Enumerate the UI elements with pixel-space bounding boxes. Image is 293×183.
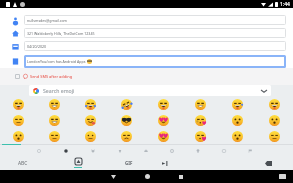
button[interactable]: 04/20/2020	[24, 41, 286, 51]
button[interactable]: Search emoji	[29, 85, 271, 96]
staticText: Search emoji	[43, 87, 75, 94]
button[interactable]: Emoji 0	[0, 96, 36, 112]
button[interactable]: Category 0	[25, 145, 52, 156]
button[interactable]: Emoji 22	[219, 128, 256, 144]
button[interactable]: Switch keyboard	[275, 170, 289, 183]
staticText: Send SMS after adding	[30, 74, 73, 79]
staticText: 1:44	[280, 1, 290, 8]
button[interactable]: Sticker	[45, 156, 110, 170]
button[interactable]: Category 5	[159, 145, 185, 156]
button[interactable]: Emoji 1	[36, 96, 72, 112]
button[interactable]: Emoji 12	[145, 112, 182, 128]
button[interactable]: Emoji 19	[108, 128, 145, 144]
button[interactable]: Emoji 13	[182, 112, 219, 128]
button[interactable]: Category 1	[52, 145, 79, 156]
button[interactable]: Emoji 4	[145, 96, 182, 112]
button[interactable]: Emoji 15	[256, 112, 293, 128]
button[interactable]: Emoji 11	[108, 112, 145, 128]
button[interactable]: Category 4	[133, 145, 159, 156]
button[interactable]: Category 3	[106, 145, 133, 156]
button[interactable]: Emoji 14	[219, 112, 256, 128]
staticText: ABC	[18, 160, 28, 167]
button[interactable]: Send SMS after adding	[0, 72, 293, 81]
button[interactable]: Emoji 8	[0, 112, 36, 128]
button[interactable]: Emoji 9	[36, 112, 72, 128]
button[interactable]: Emoji 23	[256, 128, 293, 144]
button[interactable]: Category 2	[79, 145, 106, 156]
button[interactable]: Back	[96, 170, 130, 183]
button[interactable]: Category 8	[237, 145, 263, 156]
button[interactable]: Emoji 20	[145, 128, 182, 144]
button[interactable]: Emoji 21	[182, 128, 219, 144]
button[interactable]: Emoji 7	[256, 96, 293, 112]
staticText: nullsmsdev@gmail.com	[27, 18, 67, 23]
button[interactable]: Category 7	[211, 145, 237, 156]
button[interactable]: 321 Waldoberly Hills, TheDotCom 12345	[24, 28, 286, 38]
button[interactable]: Emoji 10	[72, 112, 108, 128]
button[interactable]: Emoji 2	[72, 96, 108, 112]
staticText: 321 Waldoberly Hills, TheDotCom 12345	[27, 31, 95, 36]
button[interactable]: LondonYou/com has Android Apps	[24, 55, 286, 68]
staticText: LondonYou/com has Android Apps	[27, 59, 86, 64]
button[interactable]: Backspace	[243, 156, 293, 170]
staticText: GIF	[125, 160, 133, 166]
button[interactable]: Category 6	[185, 145, 211, 156]
button[interactable]: nullsmsdev@gmail.com	[24, 15, 286, 25]
button[interactable]: Emoji 17	[36, 128, 72, 144]
button[interactable]: Emoji 16	[0, 128, 36, 144]
button[interactable]: Emoji 6	[219, 96, 256, 112]
button[interactable]: Home	[130, 170, 164, 183]
button[interactable]: Tab	[147, 156, 183, 170]
button[interactable]: GIF	[110, 156, 147, 170]
button[interactable]: Emoji 3	[108, 96, 145, 112]
button[interactable]: Emoji 5	[182, 96, 219, 112]
button[interactable]: ABC	[0, 156, 45, 170]
button[interactable]: Emoji 18	[72, 128, 108, 144]
button[interactable]: Recents	[164, 170, 198, 183]
staticText: 04/20/2020	[27, 44, 47, 49]
